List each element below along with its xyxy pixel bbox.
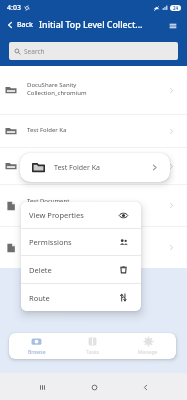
- button[interactable]: Tasks: [64, 333, 120, 359]
- staticText: Test Document: [27, 197, 70, 205]
- staticText: Delete: [29, 265, 119, 275]
- button[interactable]: Test Document: [0, 185, 187, 226]
- staticText: Test Folder Ka: [27, 126, 67, 134]
- staticText: Search: [24, 47, 45, 56]
- staticText: Collection_chromium: [27, 89, 87, 97]
- staticText: Test Folder Ka: [54, 163, 149, 173]
- staticText: 4:03: [7, 3, 21, 13]
- button[interactable]: Test Folder Ka: [20, 153, 170, 182]
- staticText: Tasks: [86, 349, 99, 356]
- button[interactable]: Browse: [9, 333, 64, 359]
- button[interactable]: More options: [164, 17, 181, 34]
- button[interactable]: Test Folder Kb: [0, 148, 187, 184]
- button[interactable]: Manage: [120, 333, 176, 359]
- button[interactable]: Test Folder Ka: [0, 115, 187, 147]
- staticText: View Properties: [29, 210, 119, 220]
- button[interactable]: Other Document: [0, 227, 187, 268]
- staticText: Other Document: [27, 239, 75, 247]
- staticText: Test Folder Kb: [27, 161, 67, 169]
- button[interactable]: View Properties: [21, 202, 141, 228]
- button[interactable]: DocuShare Sanity: [0, 66, 187, 114]
- staticText: Permissions: [29, 237, 119, 247]
- button[interactable]: Delete: [21, 256, 141, 283]
- staticText: Browse: [28, 349, 46, 356]
- other: Back: [6, 21, 14, 29]
- button[interactable]: Route: [21, 284, 141, 311]
- button[interactable]: Recents: [32, 377, 52, 397]
- button[interactable]: Back: [135, 377, 155, 397]
- staticText: 24: [173, 5, 179, 11]
- staticText: Initial Top Level Collect...: [39, 19, 164, 31]
- button[interactable]: Back: [0, 16, 34, 34]
- staticText: DocuShare Sanity: [27, 81, 77, 89]
- button[interactable]: Search: [9, 42, 178, 60]
- button[interactable]: Home: [84, 377, 104, 397]
- staticText: Route: [29, 293, 119, 303]
- button[interactable]: Permissions: [21, 229, 141, 255]
- staticText: Back: [17, 20, 33, 30]
- staticText: Manage: [138, 349, 158, 356]
